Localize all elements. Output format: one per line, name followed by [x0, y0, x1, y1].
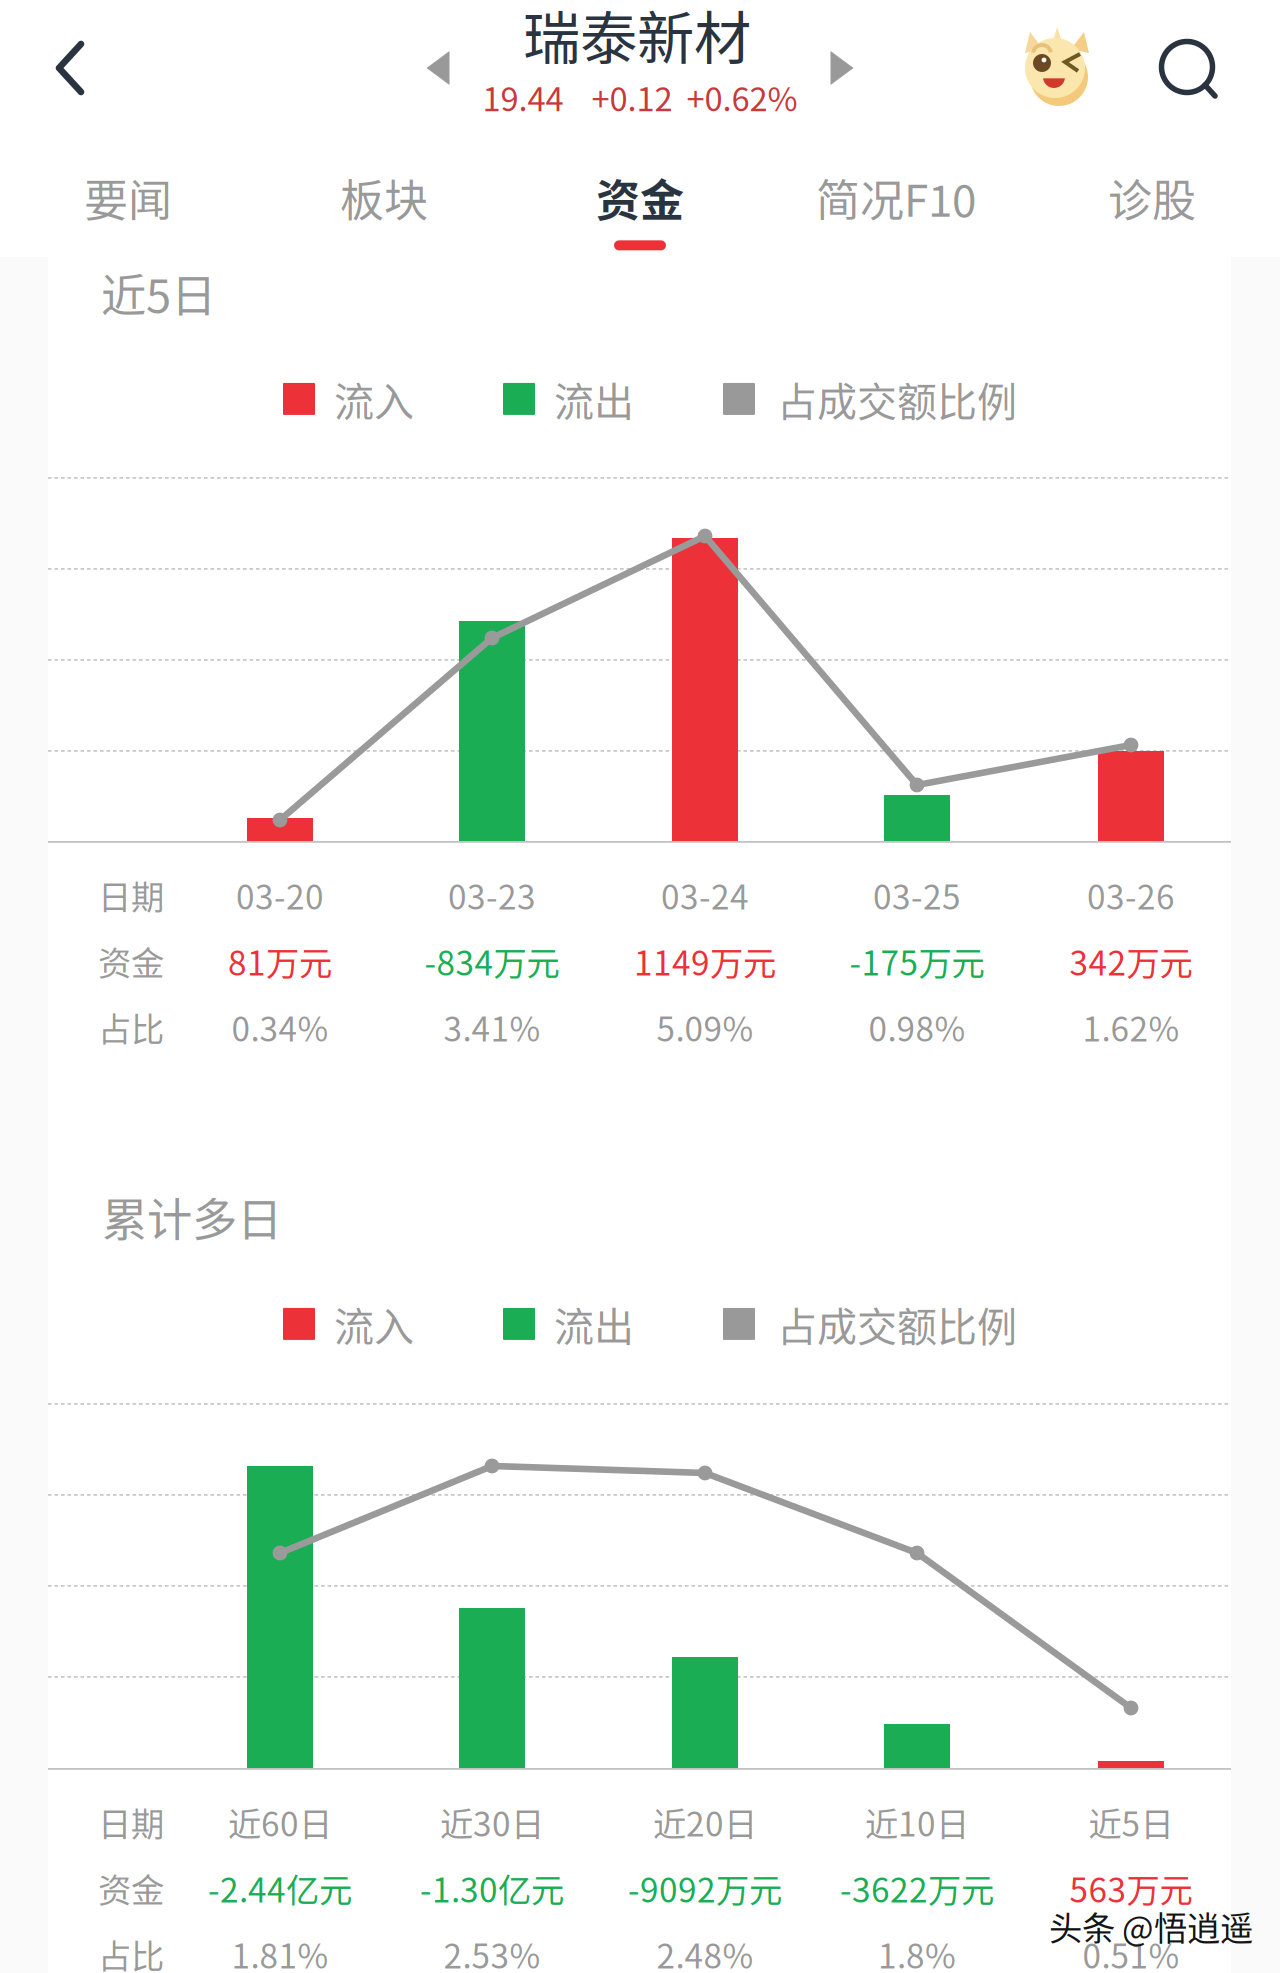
button[interactable]: Back	[10, 8, 130, 128]
staticText: 近30日	[440, 1798, 544, 1846]
staticText: 日期	[98, 871, 164, 919]
staticText: 0.34%	[231, 1003, 328, 1051]
staticText: 流出	[554, 1295, 634, 1353]
staticText: 日期	[98, 1798, 164, 1846]
staticText: 累计多日	[102, 1184, 282, 1250]
staticText: 资金	[596, 166, 684, 229]
staticText: 瑞泰新材	[523, 0, 751, 75]
button[interactable]: Bull mascot	[1000, 5, 1120, 125]
staticText: 0.98%	[868, 1003, 965, 1051]
staticText: 近10日	[865, 1798, 969, 1846]
staticText: 563万元	[1069, 1864, 1192, 1912]
staticText: 03-23	[448, 871, 536, 919]
staticText: 近60日	[228, 1798, 332, 1846]
button[interactable]: 板块	[256, 150, 512, 266]
button[interactable]: 要闻	[0, 150, 256, 266]
button[interactable]: 诊股	[1024, 150, 1280, 266]
staticText: 要闻	[84, 166, 172, 229]
button[interactable]: Next stock	[829, 50, 854, 86]
staticText: 占比	[98, 1930, 164, 1973]
staticText: 近5日	[1088, 1798, 1173, 1846]
staticText: 近5日	[101, 260, 216, 326]
staticText: -9092万元	[628, 1864, 782, 1912]
staticText: 2.53%	[443, 1930, 540, 1973]
staticText: 03-24	[661, 871, 749, 919]
staticText: 头条 @悟逍遥	[1049, 1902, 1253, 1950]
staticText: 流出	[554, 370, 634, 428]
staticText: 诊股	[1108, 166, 1196, 229]
staticText: -834万元	[424, 937, 559, 985]
button[interactable]: Search	[1129, 10, 1249, 130]
staticText: -1.30亿元	[420, 1864, 564, 1912]
staticText: -3622万元	[840, 1864, 994, 1912]
staticText: -2.44亿元	[208, 1864, 352, 1912]
button[interactable]: Previous stock	[425, 50, 450, 86]
staticText: 1.81%	[231, 1930, 328, 1973]
staticText: 近20日	[653, 1798, 757, 1846]
staticText: 2.48%	[656, 1930, 753, 1973]
staticText: 流入	[334, 1295, 414, 1353]
staticText: 占比	[98, 1003, 164, 1051]
staticText: 资金	[98, 937, 164, 985]
button[interactable]: 资金	[512, 150, 768, 266]
staticText: 0.51%	[1082, 1930, 1179, 1973]
staticText: 3.41%	[443, 1003, 540, 1051]
button[interactable]: 简况F10	[768, 150, 1024, 266]
staticText: -175万元	[849, 937, 984, 985]
staticText: 流入	[334, 370, 414, 428]
staticText: 03-20	[236, 871, 324, 919]
staticText: 占成交额比例	[777, 1295, 1017, 1353]
staticText: 1.62%	[1082, 1003, 1179, 1051]
staticText: 19.44 +0.12 +0.62%	[482, 73, 797, 121]
staticText: 03-26	[1087, 871, 1175, 919]
staticText: 资金	[98, 1864, 164, 1912]
staticText: 板块	[340, 166, 428, 229]
staticText: 5.09%	[656, 1003, 753, 1051]
staticText: 1149万元	[634, 937, 776, 985]
staticText: 81万元	[228, 937, 332, 985]
staticText: 1.8%	[878, 1930, 956, 1973]
staticText: 03-25	[873, 871, 961, 919]
staticText: 占成交额比例	[777, 370, 1017, 428]
staticText: 342万元	[1069, 937, 1192, 985]
staticText: 简况F10	[816, 166, 976, 229]
